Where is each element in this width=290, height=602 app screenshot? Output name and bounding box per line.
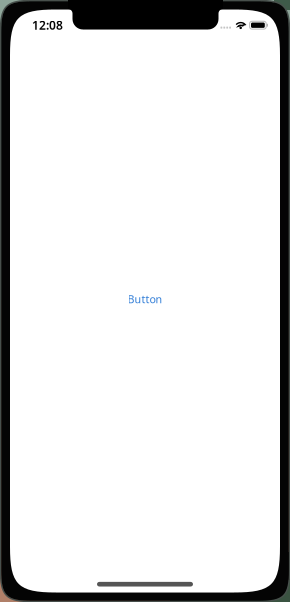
- staticText: Button: [127, 292, 162, 306]
- button[interactable]: Button: [127, 292, 162, 320]
- staticText: 12:08: [32, 17, 63, 33]
